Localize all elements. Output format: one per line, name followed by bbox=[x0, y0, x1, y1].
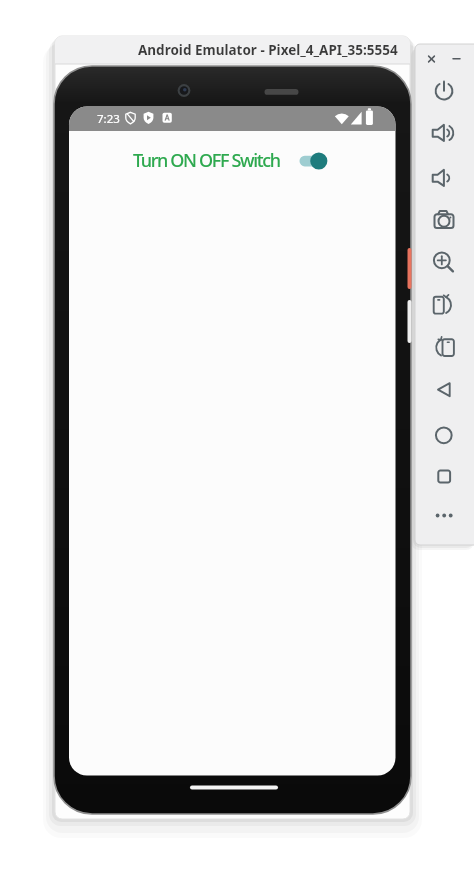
button[interactable] bbox=[429, 376, 457, 404]
button[interactable] bbox=[429, 502, 457, 530]
button[interactable] bbox=[429, 77, 457, 105]
staticText: Android Emulator - Pixel_4_API_35:5554 bbox=[138, 41, 398, 59]
button[interactable] bbox=[294, 147, 332, 175]
staticText: 7:23 bbox=[97, 111, 120, 127]
button[interactable] bbox=[429, 206, 457, 234]
button[interactable] bbox=[429, 291, 457, 319]
button[interactable] bbox=[429, 421, 457, 449]
button[interactable] bbox=[429, 119, 457, 147]
staticText: Turn ON OFF Switch bbox=[133, 148, 280, 173]
button[interactable] bbox=[448, 51, 462, 65]
button[interactable] bbox=[429, 164, 457, 192]
button[interactable] bbox=[424, 51, 438, 65]
button[interactable] bbox=[429, 334, 457, 362]
button[interactable] bbox=[429, 247, 457, 275]
button[interactable] bbox=[429, 463, 457, 491]
